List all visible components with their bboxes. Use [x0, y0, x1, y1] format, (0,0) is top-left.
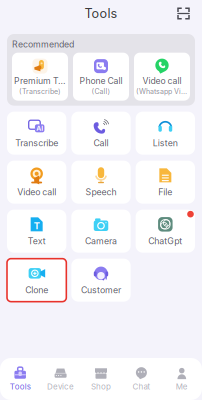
staticText: Me [176, 382, 188, 391]
staticText: Tools [10, 382, 31, 391]
button[interactable]: Me [162, 362, 202, 396]
staticText: Call [93, 138, 108, 148]
button[interactable]: Speech [71, 161, 131, 204]
staticText: Tools [84, 6, 117, 21]
button[interactable]: T [7, 210, 66, 253]
staticText: Chat [132, 382, 150, 391]
staticText: (Call) [91, 87, 110, 96]
staticText: (Whatsapp Video … [136, 87, 188, 96]
staticText: Phone Call [79, 76, 122, 86]
button[interactable]: Clone [7, 259, 66, 302]
button[interactable]: Camera [71, 210, 131, 253]
button[interactable]: Device [40, 362, 81, 396]
staticText: Transcribe [15, 138, 58, 148]
button[interactable]: ChatGpt [136, 210, 195, 253]
button[interactable]: Premium Tr… [12, 53, 68, 101]
staticText: Text [28, 236, 46, 246]
staticText: Speech [85, 187, 116, 197]
button[interactable]: Call [71, 112, 131, 155]
staticText: Premium Tr… [14, 76, 66, 86]
button[interactable]: Chat [121, 362, 162, 396]
button[interactable]: Customer [71, 259, 131, 302]
staticText: Listen [153, 138, 178, 148]
button[interactable]: Listen [136, 112, 195, 155]
staticText: ChatGpt [148, 236, 182, 246]
staticText: Camera [85, 236, 117, 246]
button[interactable]: Shop [81, 362, 121, 396]
staticText: Clone [25, 285, 48, 295]
button[interactable]: AI [7, 112, 66, 155]
button[interactable]: Video call [7, 161, 66, 204]
button[interactable]: Tools [0, 362, 40, 396]
button[interactable]: Phone Call [73, 53, 129, 101]
staticText: Video call [17, 187, 56, 197]
staticText: Customer [81, 285, 121, 295]
button[interactable]: Scan [173, 3, 194, 24]
staticText: Recommended [12, 39, 74, 50]
staticText: Shop [91, 382, 111, 391]
staticText: File [158, 187, 172, 197]
staticText: T [34, 220, 40, 232]
button[interactable]: Video call [134, 53, 190, 101]
staticText: AI [36, 124, 43, 132]
staticText: (Transcribe) [19, 87, 61, 96]
staticText: Video call [142, 76, 181, 86]
button[interactable]: File [136, 161, 195, 204]
staticText: Device [47, 382, 74, 391]
